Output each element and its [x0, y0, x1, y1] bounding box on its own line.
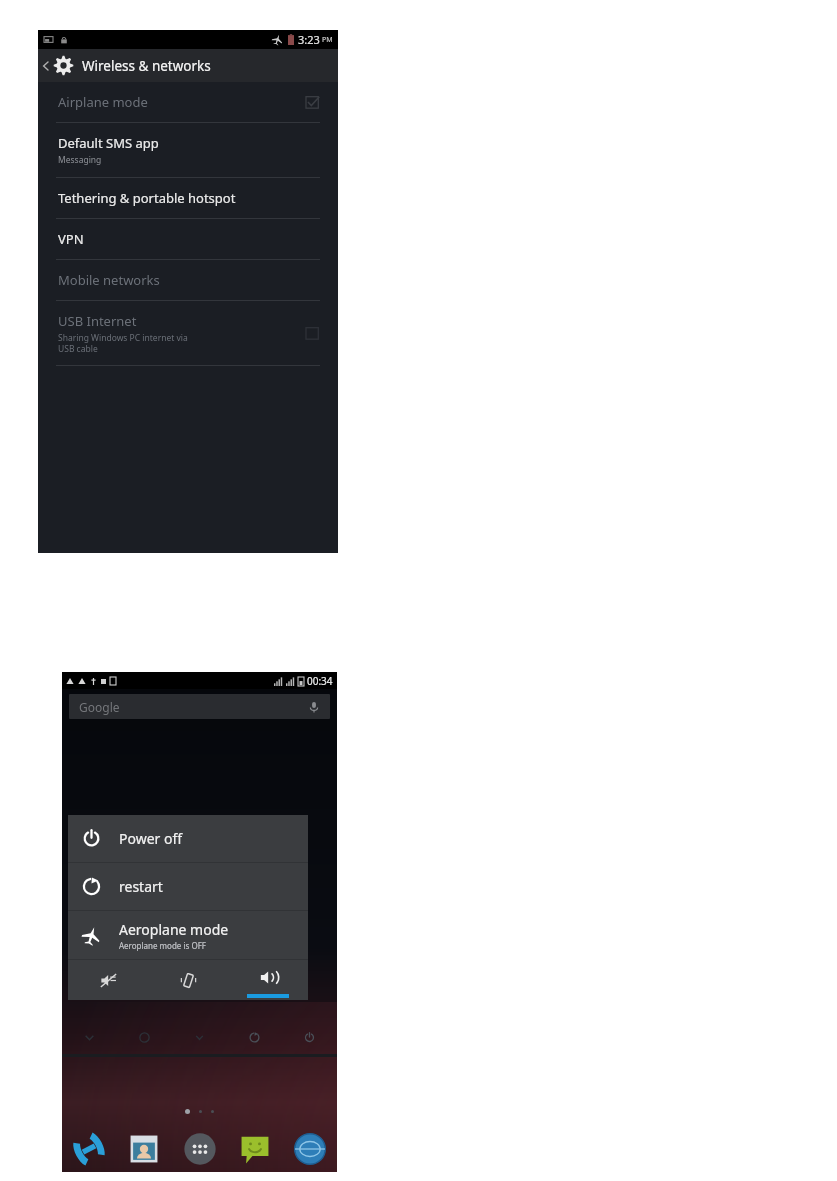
button[interactable]: Aeroplane mode — [68, 911, 308, 959]
staticText: PM — [322, 35, 333, 45]
button[interactable]: restart — [68, 863, 308, 910]
button[interactable]: Vibrate — [148, 960, 228, 1000]
staticText: USB Internet — [58, 312, 137, 330]
button[interactable]: Rotate — [227, 1024, 282, 1050]
staticText: Mobile networks — [58, 271, 160, 289]
other: USB Internet — [306, 326, 320, 340]
other: Airplane mode — [306, 95, 320, 109]
button[interactable]: Apps — [183, 1132, 217, 1166]
staticText: Google — [79, 699, 120, 715]
button[interactable]: Airplane mode — [38, 82, 338, 122]
button[interactable]: Google — [69, 694, 330, 719]
staticText: 3:23 — [298, 32, 320, 47]
button[interactable]: VPN — [38, 219, 338, 259]
other: Back — [42, 62, 50, 70]
staticText: 00:34 — [307, 674, 333, 688]
other: Voice search — [308, 701, 320, 713]
staticText: Wireless & networks — [82, 57, 211, 75]
button[interactable]: Silent — [68, 960, 148, 1000]
staticText: restart — [119, 877, 163, 896]
staticText: Tethering & portable hotspot — [58, 189, 236, 207]
button[interactable]: Mobile networks — [38, 260, 338, 300]
button[interactable]: Tethering & portable hotspot — [38, 178, 338, 218]
staticText: Aeroplane mode is OFF — [119, 940, 206, 951]
staticText: Airplane mode — [58, 93, 148, 111]
button[interactable]: Sound on — [228, 960, 308, 1000]
staticText: Power off — [119, 829, 183, 848]
staticText: Messaging — [58, 154, 102, 166]
staticText: Default SMS app — [58, 134, 159, 152]
button[interactable]: Contacts — [128, 1133, 160, 1165]
button[interactable]: Browser — [293, 1132, 327, 1166]
staticText: VPN — [58, 230, 84, 248]
button[interactable]: Home — [117, 1024, 172, 1050]
button[interactable]: Power off — [68, 815, 308, 862]
button[interactable]: Power — [282, 1024, 337, 1050]
staticText: Sharing Windows PC internet via USB cabl… — [58, 332, 188, 354]
button[interactable]: Phone — [72, 1132, 106, 1166]
button[interactable]: USB Internet — [38, 301, 338, 365]
button[interactable]: Back — [38, 49, 338, 82]
staticText: Aeroplane mode — [119, 920, 229, 939]
button[interactable]: Messaging — [239, 1133, 271, 1165]
button[interactable]: Default SMS app — [38, 123, 338, 177]
